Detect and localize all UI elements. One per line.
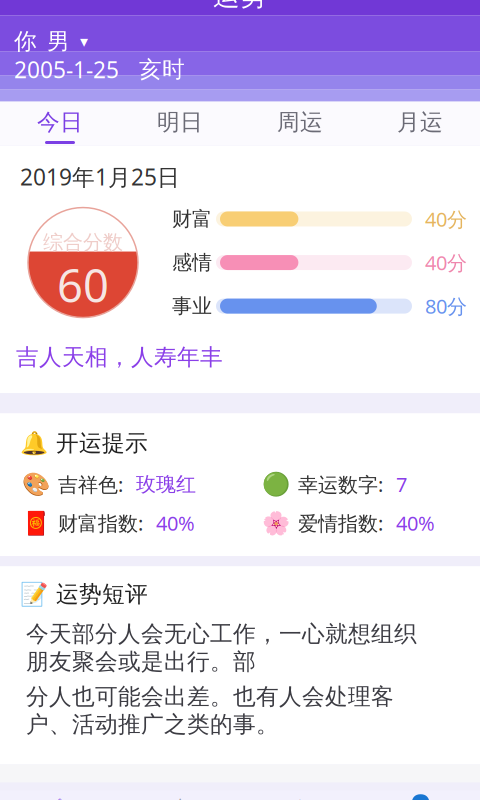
staticText: 爱情指数: — [298, 510, 388, 536]
staticText: 综合分数 — [43, 230, 123, 255]
staticText: 🔔 — [20, 430, 48, 456]
staticText: 明日 — [157, 108, 203, 136]
staticText: 2019年1月25日 — [20, 162, 180, 192]
button[interactable]: 月运 — [360, 102, 480, 146]
button[interactable]: 你 — [0, 28, 480, 54]
staticText: 40% — [156, 510, 195, 536]
staticText: 吉祥色: — [58, 471, 128, 498]
staticText: 财富 — [172, 207, 212, 231]
staticText: 🎨 — [22, 471, 50, 497]
staticText: 80分 — [425, 293, 467, 319]
staticText: 分人也可能会出差。也有人会处理客户、活动推广之类的事。 — [26, 683, 394, 738]
button[interactable]: ⚛ — [0, 790, 120, 800]
staticText: 玫瑰红 — [136, 472, 196, 497]
staticText: 2005-1-25 — [14, 54, 119, 84]
staticText: 7 — [396, 471, 407, 498]
staticText: 🟢 — [262, 471, 290, 497]
staticText: 40% — [396, 510, 435, 536]
staticText: 周运 — [277, 108, 323, 136]
staticText: 感情 — [172, 250, 212, 275]
staticText: 🌸 — [262, 510, 290, 536]
button[interactable]: 周运 — [240, 102, 360, 146]
staticText: 40分 — [425, 249, 467, 276]
staticText: 运势短评 — [56, 580, 148, 608]
staticText: 60 — [57, 255, 109, 315]
staticText: 事业 — [172, 294, 212, 318]
staticText: 今日 — [37, 108, 83, 136]
staticText: 幸运数字: — [298, 471, 388, 498]
staticText: ⚛ — [48, 794, 72, 800]
staticText: 月运 — [397, 108, 443, 136]
staticText: 开运提示 — [56, 429, 148, 457]
button[interactable]: 👤 — [360, 790, 480, 800]
staticText: ▾ — [80, 32, 88, 50]
staticText: 40分 — [425, 206, 467, 232]
staticText: 今天部分人会无心工作，一心就想组织朋友聚会或是出行。部 — [26, 620, 417, 676]
staticText: ✡ — [169, 794, 191, 800]
staticText: 📝 — [20, 581, 48, 607]
staticText: 👤 — [403, 794, 436, 800]
staticText: 男 — [47, 27, 70, 55]
staticText: 财富指数: — [58, 510, 148, 536]
button[interactable]: 今日 — [0, 102, 120, 146]
staticText: 🧧 — [22, 510, 50, 536]
staticText: 吉人天相，人寿年丰 — [16, 343, 223, 371]
button[interactable]: 明日 — [120, 102, 240, 146]
staticText: 你 — [14, 27, 37, 55]
staticText: 运势 — [213, 0, 267, 12]
staticText: 亥时 — [139, 55, 185, 83]
